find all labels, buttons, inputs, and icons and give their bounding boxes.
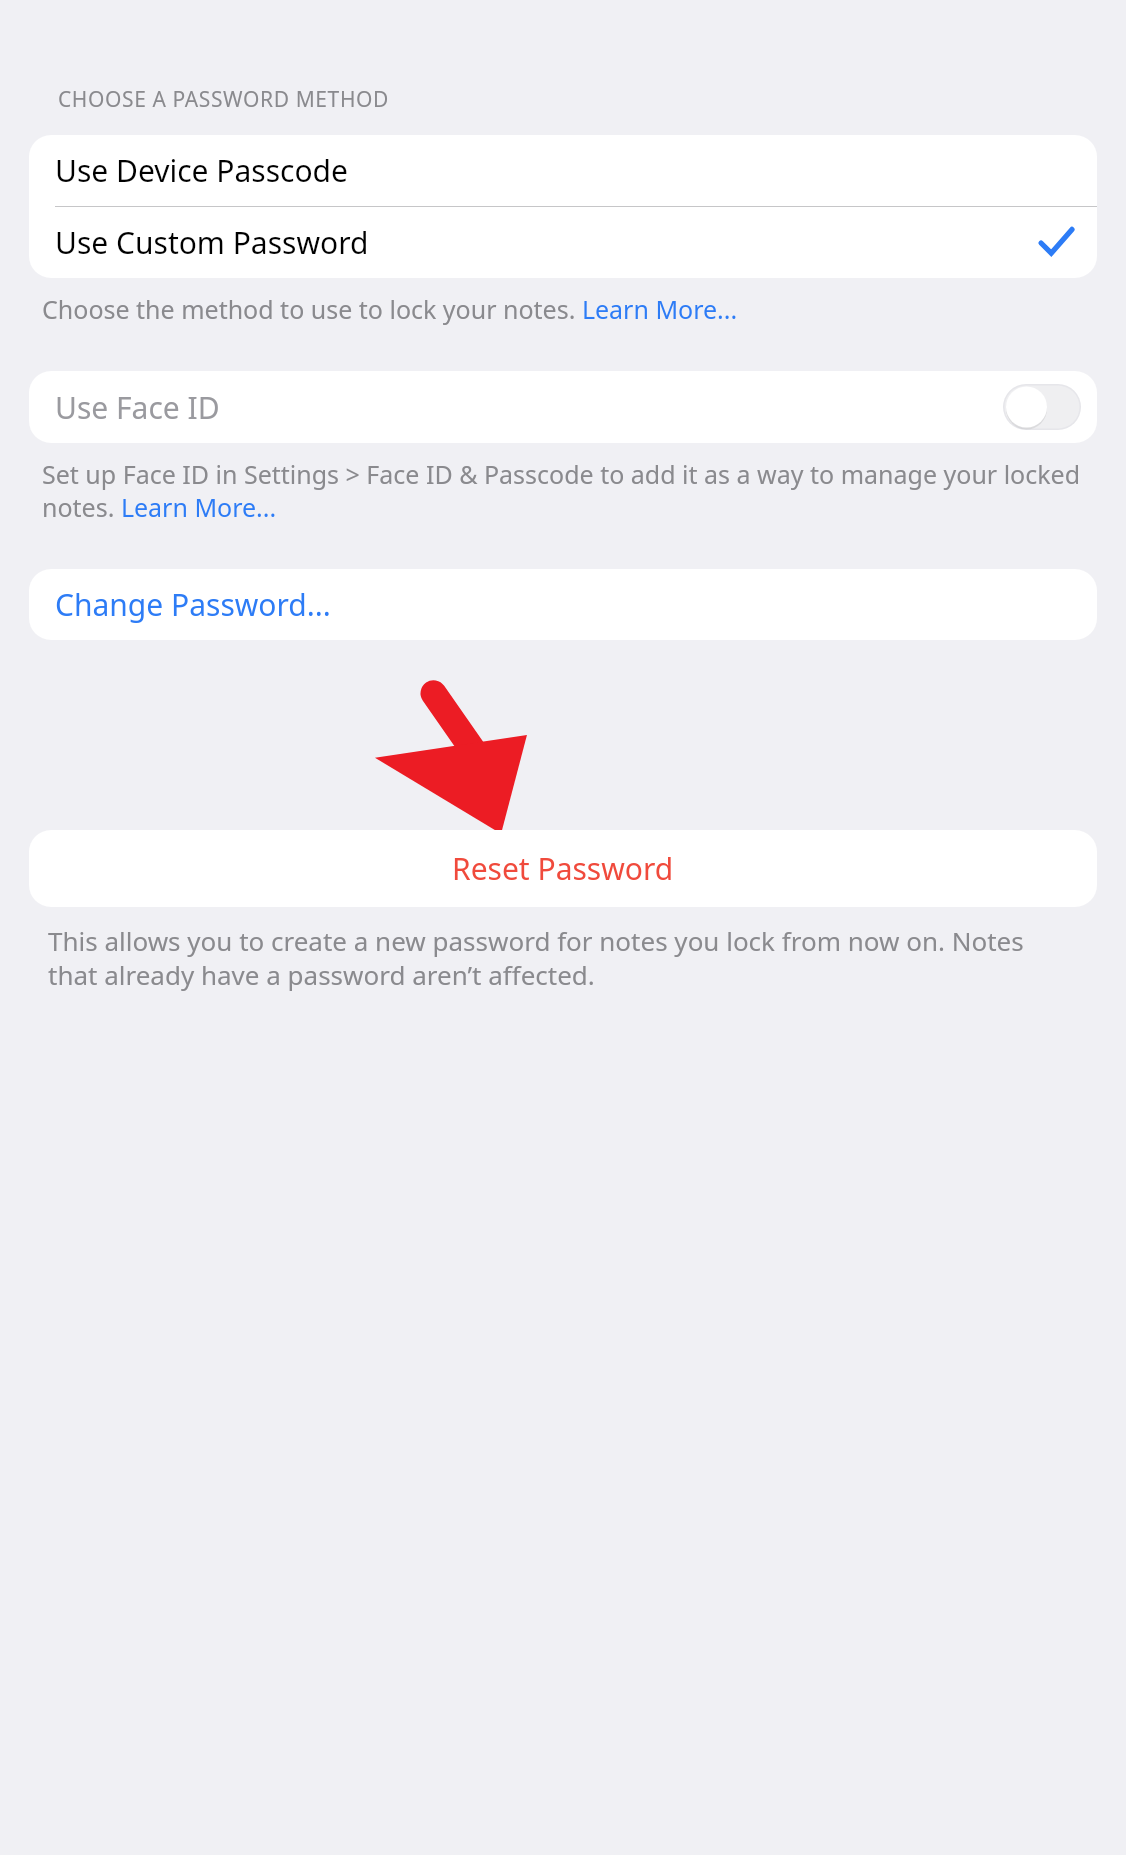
- other: Selected: [1039, 226, 1073, 260]
- staticText: Use Face ID: [55, 387, 220, 428]
- staticText: Reset Password: [452, 848, 674, 889]
- button[interactable]: Use Custom Password: [29, 207, 1097, 278]
- button[interactable]: Reset Password: [29, 830, 1097, 907]
- staticText: Change Password...: [55, 584, 331, 625]
- button[interactable]: Change Password...: [29, 569, 1097, 640]
- staticText: Use Custom Password: [55, 222, 369, 263]
- button[interactable]: Use Device Passcode: [29, 135, 1097, 206]
- button[interactable]: Use Face ID: [29, 371, 1097, 443]
- staticText: This allows you to create a new password…: [48, 923, 1078, 992]
- button[interactable]: Use Face ID toggle, off: [1003, 384, 1081, 430]
- staticText: Use Device Passcode: [55, 150, 348, 191]
- staticText: Choose the method to use to lock your no…: [42, 292, 738, 326]
- staticText: Set up Face ID in Settings > Face ID & P…: [42, 457, 1084, 524]
- staticText: CHOOSE A PASSWORD METHOD: [58, 85, 389, 114]
